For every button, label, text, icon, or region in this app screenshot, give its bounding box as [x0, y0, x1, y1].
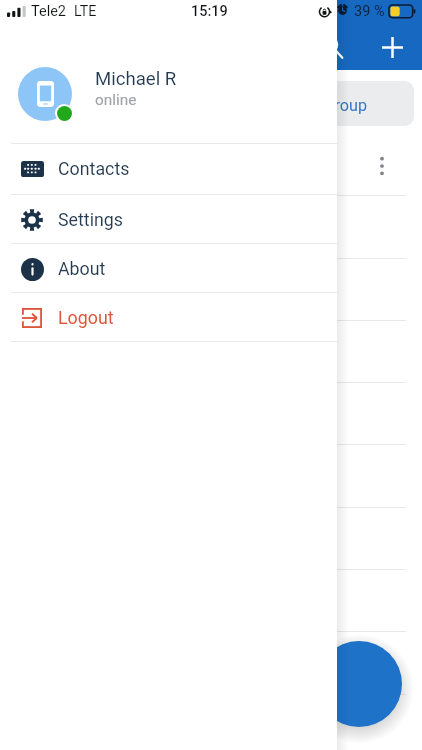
button[interactable]: More options: [0, 134, 422, 196]
button[interactable]: New group: [234, 81, 414, 126]
staticText: New group: [289, 96, 367, 115]
button[interactable]: New message: [316, 641, 402, 727]
staticText: Logout: [58, 307, 114, 328]
button[interactable]: Contacts: [0, 144, 337, 193]
button[interactable]: Search: [310, 25, 354, 69]
button[interactable]: Settings: [0, 195, 337, 244]
staticText: Settings: [58, 209, 123, 230]
button[interactable]: [0, 633, 422, 695]
staticText: Tele2: [31, 3, 67, 20]
staticText: About: [58, 258, 106, 279]
button[interactable]: Michael R: [0, 24, 337, 143]
button[interactable]: Logout: [0, 293, 337, 342]
staticText: LTE: [74, 3, 97, 20]
button[interactable]: [0, 321, 422, 383]
staticText: Michael R: [95, 68, 177, 90]
button[interactable]: New chat: [370, 25, 414, 69]
button[interactable]: More options: [368, 152, 396, 180]
staticText: Contacts: [58, 158, 130, 179]
staticText: online: [95, 91, 137, 109]
staticText: 15:19: [191, 3, 228, 20]
staticText: 39 %: [354, 3, 385, 20]
button[interactable]: About: [0, 244, 337, 293]
button[interactable]: [0, 197, 422, 259]
button[interactable]: [0, 259, 422, 321]
